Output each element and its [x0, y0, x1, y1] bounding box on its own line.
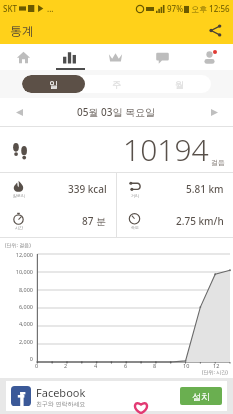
staticText: 12	[213, 362, 220, 369]
staticText: 10194	[123, 129, 209, 170]
staticText: 월	[175, 79, 184, 90]
staticText: 칼로리	[13, 193, 25, 198]
button[interactable]: Ranking	[92, 44, 139, 70]
button[interactable]: 속도	[116, 205, 233, 237]
staticText: 2,000	[1, 338, 33, 345]
staticText: 오후 12:56	[191, 3, 230, 14]
button[interactable]: 월	[148, 75, 211, 93]
button[interactable]: 거리	[116, 173, 233, 205]
staticText: 10,000	[1, 268, 33, 275]
staticText: 0	[1, 355, 33, 362]
staticText: 8,000	[1, 286, 33, 293]
staticText: Facebook	[36, 385, 86, 400]
staticText: 일	[49, 79, 58, 90]
staticText: 주	[112, 79, 121, 90]
staticText: (단위: 시간)	[202, 369, 228, 376]
staticText: 87 분	[82, 214, 107, 228]
button[interactable]: Messages	[139, 44, 186, 70]
staticText: 거리	[131, 193, 139, 198]
staticText: 속도	[131, 225, 139, 230]
button[interactable]: Statistics	[46, 44, 92, 70]
button[interactable]: Facebook	[0, 378, 233, 414]
staticText: 2.75 km/h	[176, 214, 224, 228]
staticText: 시간	[15, 225, 23, 230]
staticText: 설치	[192, 391, 210, 402]
staticText: 10	[183, 362, 190, 369]
button[interactable]: Previous day	[10, 103, 28, 121]
staticText: 5.81 km	[186, 182, 224, 196]
staticText: 6,000	[1, 303, 33, 310]
staticText: 통계	[10, 23, 34, 38]
staticText: ...	[47, 3, 54, 14]
staticText: 0	[35, 362, 39, 369]
staticText: 친구와 연락하세요	[36, 400, 86, 408]
staticText: 8	[153, 362, 157, 369]
button[interactable]: Profile	[186, 44, 233, 70]
staticText: 4,000	[1, 320, 33, 327]
staticText: 05월 03일 목요일	[77, 105, 156, 119]
button[interactable]: 설치	[180, 387, 222, 405]
staticText: SKT	[3, 3, 17, 14]
button[interactable]: Share	[205, 20, 225, 40]
staticText: 339 kcal	[68, 182, 107, 196]
button[interactable]: 주	[85, 75, 148, 93]
button[interactable]: 일	[22, 75, 85, 93]
staticText: (단위: 걸음)	[5, 242, 31, 249]
button[interactable]: 칼로리	[0, 173, 116, 205]
button[interactable]: Home	[0, 44, 46, 70]
staticText: 2	[64, 362, 68, 369]
staticText: 걸음	[211, 158, 225, 167]
button[interactable]: 시간	[0, 205, 116, 237]
staticText: 4	[94, 362, 98, 369]
staticText: 6	[124, 362, 128, 369]
staticText: 12,000	[1, 251, 33, 258]
staticText: 97%	[167, 3, 183, 14]
button[interactable]: Next day	[205, 103, 223, 121]
